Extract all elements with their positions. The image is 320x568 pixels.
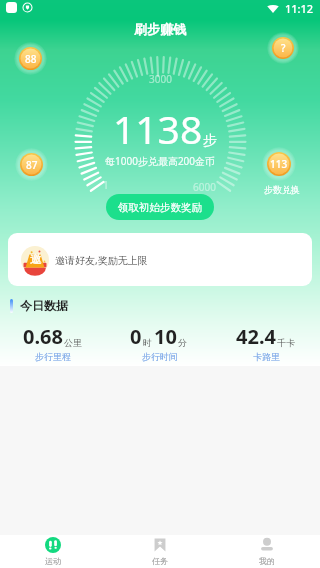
staticText: 任务 xyxy=(152,556,168,566)
staticText: 运动 xyxy=(45,556,61,566)
staticText: 11:12 xyxy=(285,1,314,16)
staticText: 87 xyxy=(26,158,38,172)
button[interactable]: 42.4 xyxy=(213,323,320,362)
button[interactable]: 88 coins xyxy=(14,42,47,75)
staticText: 时 xyxy=(143,337,152,348)
staticText: 卡路里 xyxy=(253,351,280,362)
button[interactable]: 运动 xyxy=(0,535,106,568)
staticText: 0 xyxy=(130,323,142,350)
button[interactable]: 邀 xyxy=(8,233,312,286)
button[interactable]: 我的 xyxy=(213,535,320,568)
staticText: 步数兑换 xyxy=(264,184,300,195)
staticText: 0.68 xyxy=(23,323,63,350)
staticText: 1 xyxy=(103,178,109,192)
button[interactable]: Mystery coin xyxy=(267,32,299,64)
button[interactable]: 113 coins xyxy=(262,147,296,181)
staticText: 88 xyxy=(25,52,37,66)
button[interactable]: 87 coins xyxy=(15,148,48,181)
staticText: 113 xyxy=(270,157,288,171)
button[interactable]: 领取初始步数奖励 xyxy=(106,194,214,220)
staticText: 邀 xyxy=(30,252,41,266)
staticText: 10 xyxy=(154,323,177,350)
staticText: 1138 xyxy=(113,102,203,155)
staticText: 3000 xyxy=(149,72,172,86)
staticText: 邀请好友,奖励无上限 xyxy=(55,253,148,267)
staticText: 步 xyxy=(203,132,217,150)
staticText: 分 xyxy=(178,337,187,348)
staticText: 每1000步兑最高200金币 xyxy=(105,154,216,168)
staticText: 领取初始步数奖励 xyxy=(118,201,202,214)
staticText: ? xyxy=(281,41,286,55)
button[interactable]: 0.68 xyxy=(0,323,106,362)
button[interactable]: 任务 xyxy=(106,535,213,568)
staticText: 今日数据 xyxy=(20,298,68,313)
staticText: 步行里程 xyxy=(35,351,71,362)
staticText: 我的 xyxy=(259,556,275,566)
staticText: 步行时间 xyxy=(142,351,178,362)
staticText: 公里 xyxy=(64,337,82,348)
button[interactable]: 0 xyxy=(106,323,213,362)
staticText: 刷步赚钱 xyxy=(134,21,186,37)
staticText: 千卡 xyxy=(277,337,295,348)
staticText: 6000 xyxy=(193,180,216,194)
staticText: 42.4 xyxy=(236,323,276,350)
